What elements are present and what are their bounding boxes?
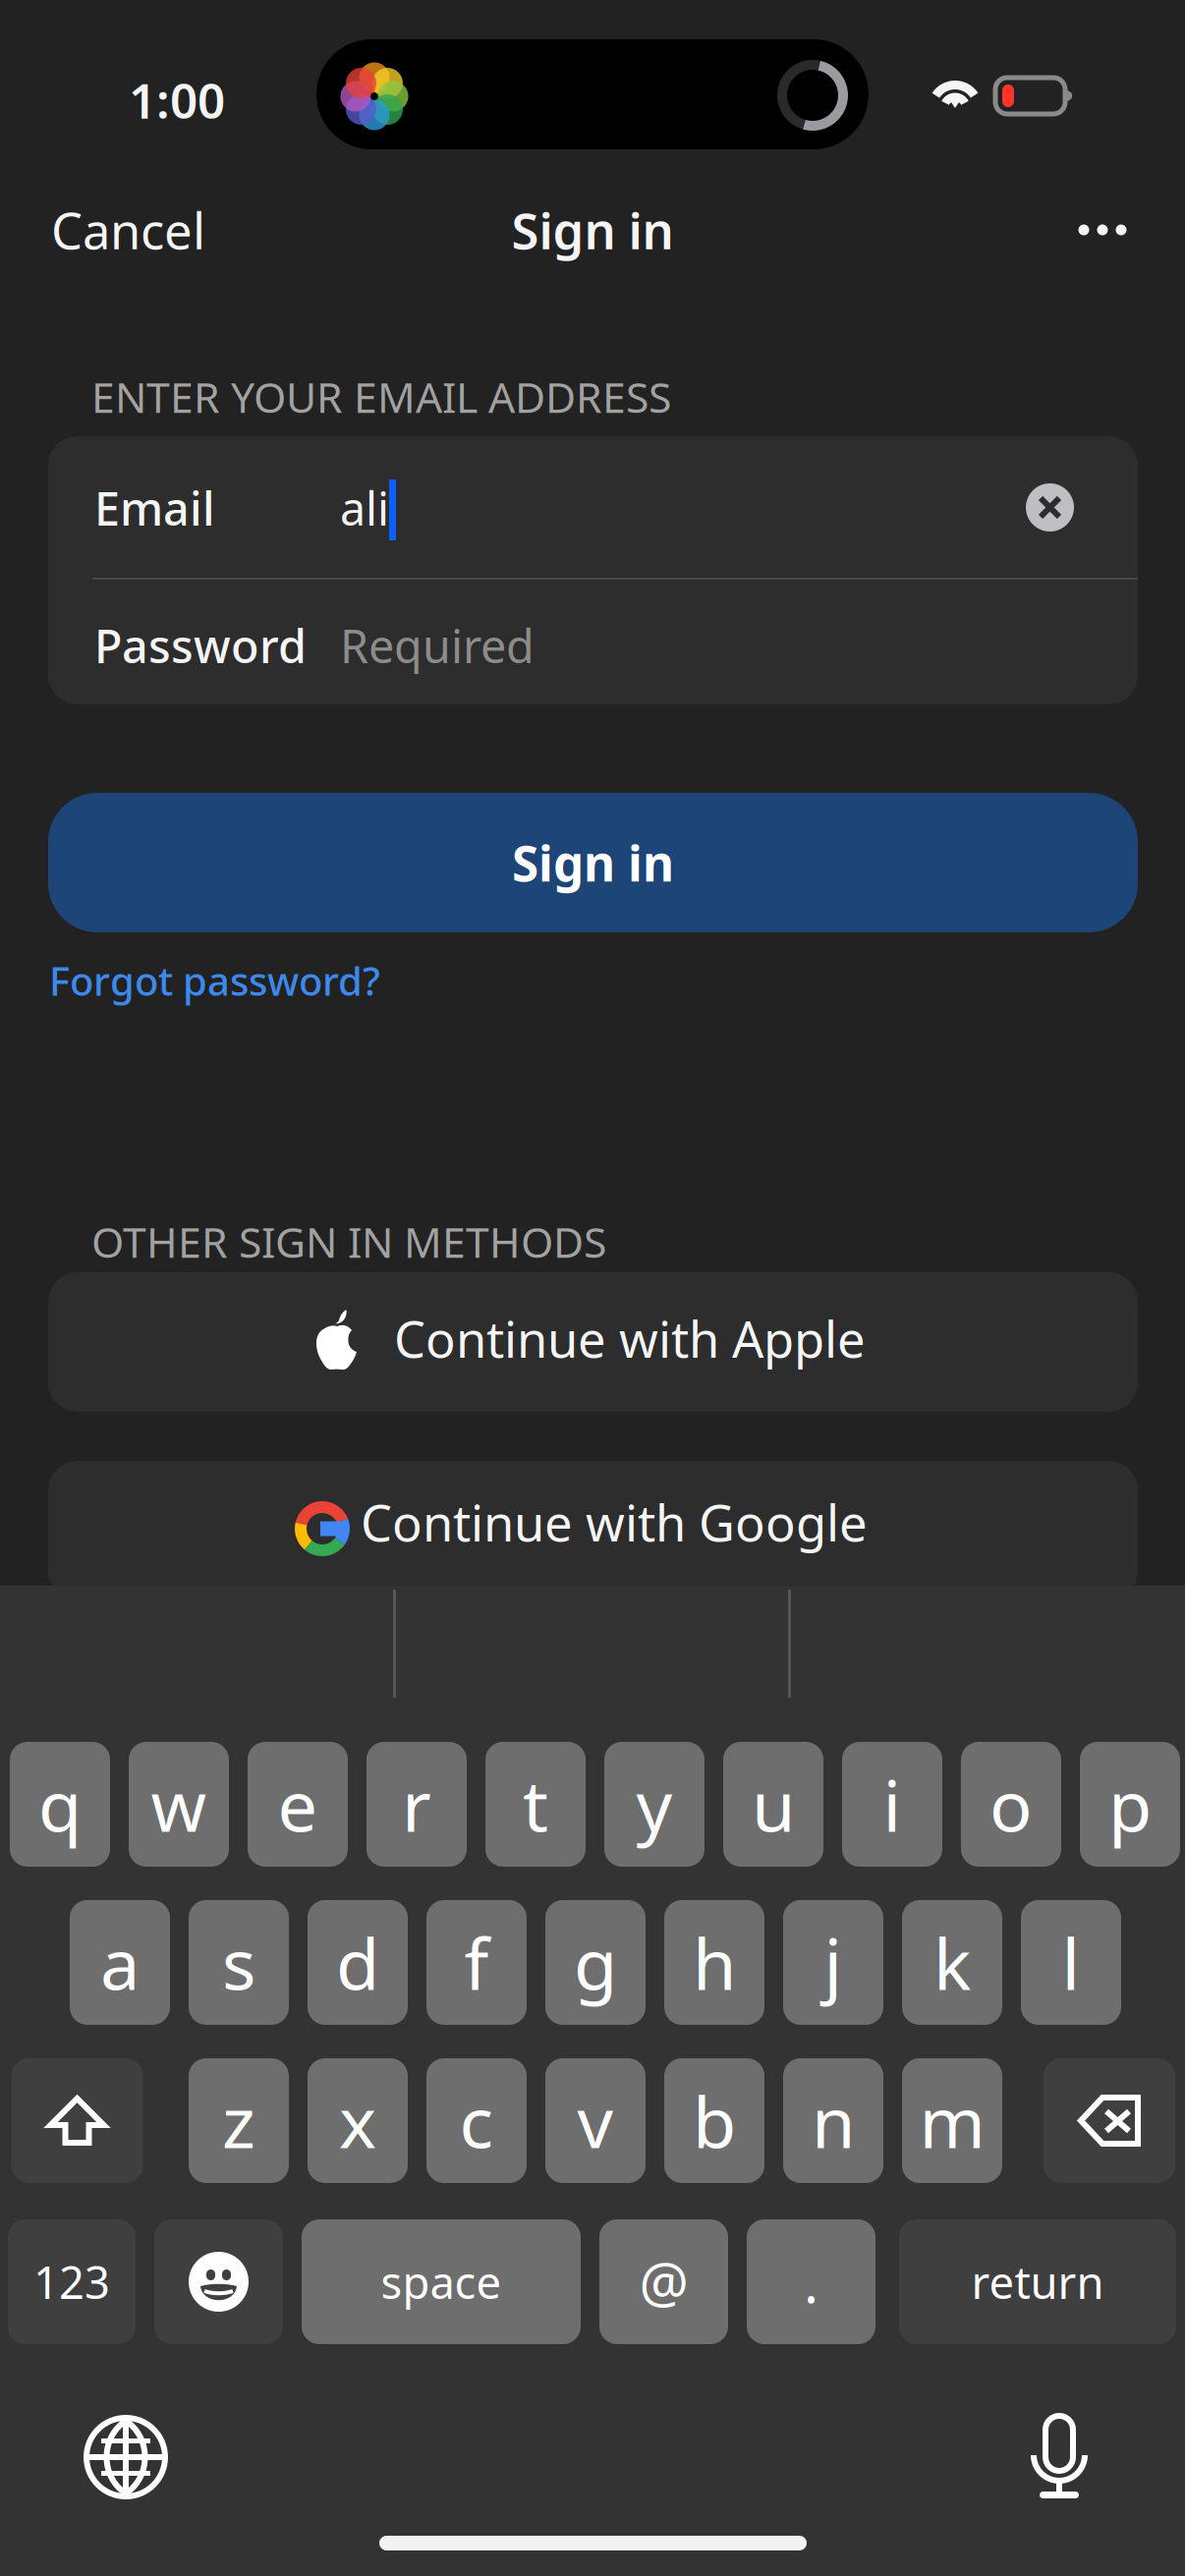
button[interactable]: v <box>545 2058 646 2183</box>
staticText: k <box>933 1915 971 2009</box>
button[interactable]: s <box>189 1900 289 2025</box>
button[interactable]: l <box>1021 1900 1121 2025</box>
staticText: m <box>919 2074 985 2168</box>
staticText: OTHER SIGN IN METHODS <box>91 1214 606 1269</box>
staticText: f <box>464 1915 489 2009</box>
staticText: u <box>752 1757 795 1851</box>
staticText: z <box>222 2074 255 2168</box>
button[interactable]: More options <box>1039 183 1166 277</box>
staticText: Required <box>340 615 535 676</box>
staticText: y <box>636 1757 673 1851</box>
staticText: w <box>151 1757 207 1851</box>
button[interactable]: u <box>723 1742 823 1867</box>
button[interactable]: Dictation <box>1031 2416 1088 2500</box>
button[interactable]: space <box>302 2219 581 2344</box>
button[interactable]: e <box>248 1742 348 1867</box>
button[interactable]: t <box>485 1742 586 1867</box>
button[interactable]: o <box>961 1742 1061 1867</box>
staticText: Password <box>94 615 307 676</box>
staticText: Forgot password? <box>49 954 380 1007</box>
button[interactable]: m <box>902 2058 1002 2183</box>
staticText: j <box>824 1915 843 2009</box>
staticText: Continue with Apple <box>394 1305 866 1372</box>
button[interactable]: k <box>902 1900 1002 2025</box>
button[interactable]: p <box>1080 1742 1180 1867</box>
staticText: Sign in <box>511 197 674 263</box>
staticText: i <box>883 1757 902 1851</box>
button[interactable]: Forgot password? <box>24 938 456 1023</box>
staticText: q <box>38 1757 82 1851</box>
staticText: d <box>336 1915 379 2009</box>
staticText: r <box>402 1757 431 1851</box>
button[interactable]: . <box>747 2219 875 2344</box>
staticText: Continue with Google <box>361 1489 868 1555</box>
button[interactable]: Cancel <box>24 183 289 277</box>
button[interactable]: Continue with Google <box>48 1461 1138 1600</box>
staticText: o <box>989 1757 1033 1851</box>
button[interactable]: Continue with Apple <box>48 1272 1138 1412</box>
button[interactable]: Delete <box>1044 2058 1175 2183</box>
staticText: s <box>222 1915 255 2009</box>
staticText: n <box>812 2074 855 2168</box>
staticText: Email <box>94 477 215 538</box>
staticText: v <box>577 2074 614 2168</box>
button[interactable]: 123 <box>8 2219 136 2344</box>
staticText: a <box>100 1915 140 2009</box>
button[interactable]: z <box>189 2058 289 2183</box>
staticText: p <box>1108 1757 1152 1851</box>
staticText: return <box>971 2252 1104 2311</box>
staticText: 1:00 <box>129 68 225 132</box>
button[interactable]: b <box>664 2058 764 2183</box>
button[interactable]: w <box>129 1742 229 1867</box>
button[interactable]: a <box>70 1900 170 2025</box>
button[interactable]: Sign in <box>48 793 1138 932</box>
staticText: t <box>523 1757 548 1851</box>
staticText: @ <box>639 2245 688 2318</box>
staticText: e <box>278 1757 318 1851</box>
button[interactable]: q <box>10 1742 110 1867</box>
button[interactable]: Switch keyboard <box>86 2418 165 2496</box>
staticText: Cancel <box>51 197 205 263</box>
button[interactable]: i <box>842 1742 942 1867</box>
staticText: ali <box>340 477 389 538</box>
button[interactable]: Shift <box>11 2058 143 2183</box>
staticText: c <box>459 2074 494 2168</box>
button[interactable]: d <box>308 1900 408 2025</box>
staticText: l <box>1062 1915 1080 2009</box>
button[interactable]: r <box>367 1742 467 1867</box>
button[interactable]: g <box>545 1900 646 2025</box>
button[interactable]: x <box>308 2058 408 2183</box>
button[interactable]: Clear text <box>1026 483 1074 532</box>
staticText: . <box>804 2245 818 2318</box>
button[interactable]: h <box>664 1900 764 2025</box>
staticText: x <box>339 2074 376 2168</box>
staticText: Sign in <box>512 830 674 895</box>
button[interactable]: n <box>783 2058 883 2183</box>
button[interactable]: @ <box>599 2219 728 2344</box>
staticText: 123 <box>33 2252 110 2311</box>
button[interactable]: Emoji <box>154 2219 283 2344</box>
staticText: space <box>381 2252 502 2311</box>
staticText: ENTER YOUR EMAIL ADDRESS <box>91 369 671 424</box>
button[interactable]: y <box>604 1742 705 1867</box>
button[interactable]: j <box>783 1900 883 2025</box>
button[interactable]: return <box>899 2219 1176 2344</box>
button[interactable]: c <box>426 2058 527 2183</box>
staticText: h <box>693 1915 736 2009</box>
staticText: b <box>693 2074 736 2168</box>
staticText: g <box>574 1915 617 2009</box>
button[interactable]: f <box>426 1900 527 2025</box>
